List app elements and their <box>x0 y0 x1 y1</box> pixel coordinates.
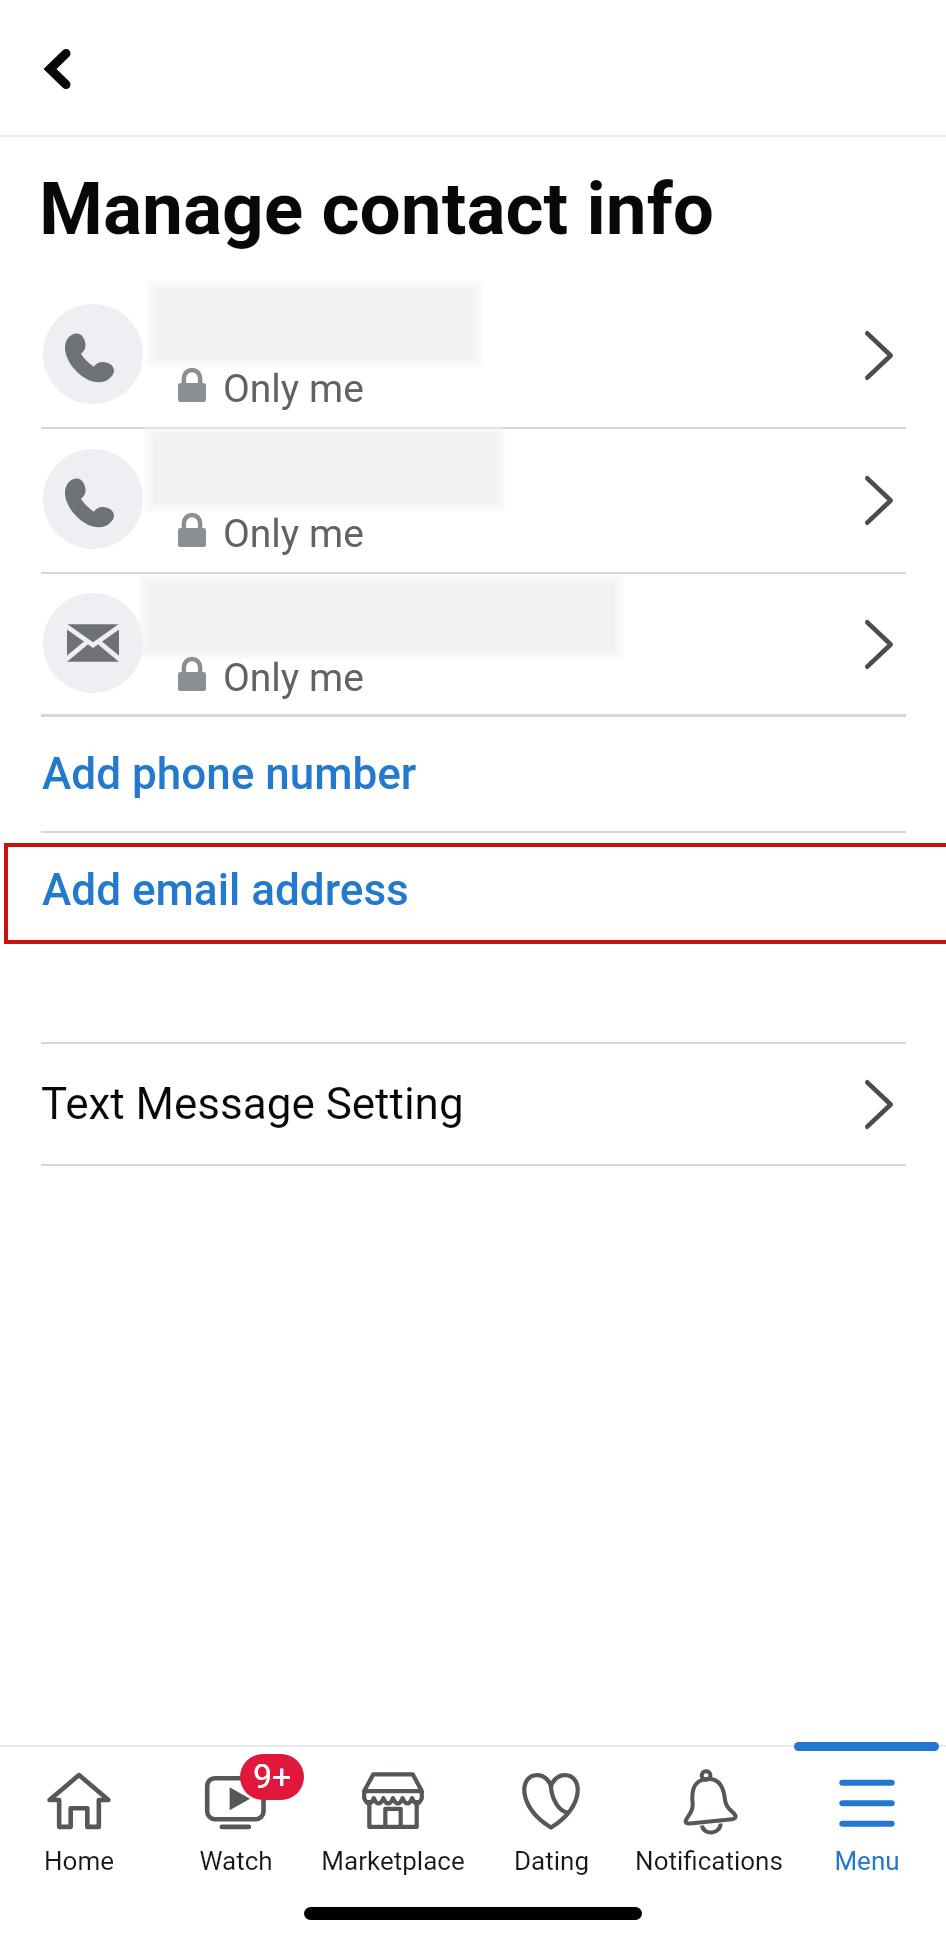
staticText: Home <box>44 1846 114 1876</box>
staticText: Menu <box>834 1846 900 1876</box>
button[interactable]: Marketplace <box>314 1748 472 1898</box>
staticText: Only me <box>223 511 364 557</box>
button[interactable]: Add phone number <box>0 716 946 831</box>
button[interactable]: Text Message Setting <box>0 1043 946 1165</box>
staticText: Watch <box>199 1846 273 1876</box>
staticText: 9+ <box>253 1756 292 1796</box>
staticText: Only me <box>223 655 364 701</box>
button[interactable]: Add email address <box>0 832 946 947</box>
button[interactable]: Menu <box>788 1748 946 1898</box>
button[interactable]: Dating <box>472 1748 630 1898</box>
button[interactable]: 9+ <box>157 1748 314 1898</box>
staticText: Dating <box>514 1846 589 1876</box>
button[interactable]: Home <box>0 1748 157 1898</box>
staticText: Marketplace <box>321 1846 465 1876</box>
button[interactable]: Only me <box>0 573 946 715</box>
staticText: Add phone number <box>42 748 417 800</box>
button[interactable]: Back <box>14 22 104 112</box>
button[interactable]: Only me <box>0 283 946 427</box>
staticText: Manage contact info <box>39 166 715 252</box>
button[interactable]: Only me <box>0 428 946 572</box>
staticText: Text Message Setting <box>41 1078 464 1130</box>
staticText: Add email address <box>42 864 409 916</box>
staticText: Only me <box>223 366 364 412</box>
button[interactable]: Notifications <box>630 1748 788 1898</box>
staticText: Notifications <box>635 1846 783 1876</box>
